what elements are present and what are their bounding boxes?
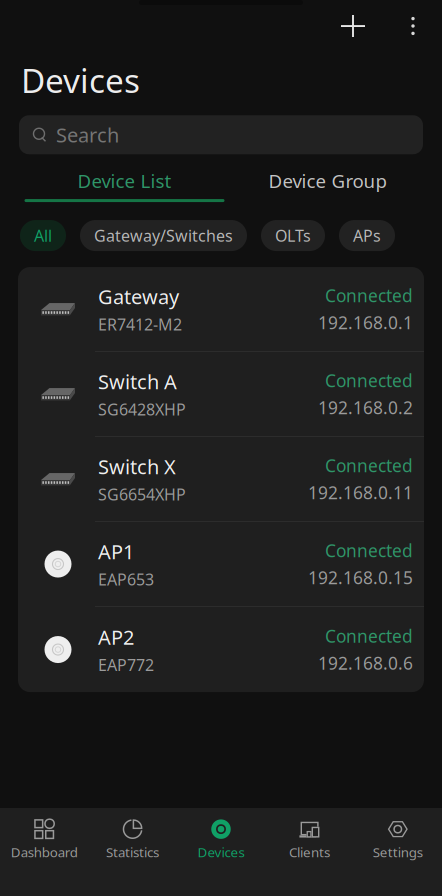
staticText: Connected (325, 539, 413, 562)
staticText: Connected (325, 369, 413, 392)
staticText: All (34, 225, 52, 246)
staticText: 192.168.0.11 (308, 481, 413, 504)
staticText: EAP772 (98, 654, 154, 675)
button[interactable]: Device Group (226, 168, 429, 202)
button[interactable]: Add device (319, 4, 387, 48)
button[interactable]: Gateway (18, 267, 424, 352)
button[interactable]: All (20, 220, 66, 251)
button[interactable]: AP1 (18, 522, 424, 607)
staticText: Gateway (98, 283, 179, 310)
staticText: Clients (289, 843, 330, 861)
button[interactable]: Dashboard (0, 819, 88, 861)
staticText: Statistics (106, 843, 159, 861)
button[interactable]: Devices (177, 819, 265, 861)
staticText: AP2 (98, 624, 134, 650)
staticText: Devices (197, 843, 244, 861)
button[interactable]: OLTs (261, 220, 325, 251)
staticText: Devices (21, 58, 140, 102)
button[interactable]: Gateway/Switches (80, 220, 247, 251)
staticText: Connected (325, 454, 413, 477)
staticText: Dashboard (11, 843, 78, 861)
staticText: OLTs (275, 225, 311, 246)
staticText: APs (353, 225, 381, 246)
staticText: Switch X (98, 453, 176, 480)
button[interactable]: Switch A (18, 352, 424, 437)
staticText: 192.168.0.6 (318, 652, 413, 675)
staticText: 192.168.0.2 (318, 396, 413, 419)
staticText: EAP653 (98, 569, 154, 590)
staticText: 192.168.0.15 (308, 566, 413, 589)
staticText: 192.168.0.1 (318, 311, 413, 334)
button[interactable]: AP2 (18, 607, 424, 692)
staticText: Search (56, 121, 119, 148)
button[interactable]: Device List (23, 168, 226, 202)
button[interactable]: Switch X (18, 437, 424, 522)
staticText: Connected (325, 284, 413, 307)
button[interactable]: More options (387, 4, 439, 48)
staticText: Gateway/Switches (94, 225, 233, 246)
staticText: Connected (325, 624, 413, 647)
button[interactable]: Settings (354, 819, 442, 861)
staticText: Device List (77, 168, 171, 193)
staticText: AP1 (98, 538, 134, 565)
staticText: Switch A (98, 368, 177, 395)
staticText: SG6654XHP (98, 484, 186, 505)
staticText: Device Group (268, 168, 386, 193)
staticText: ER7412-M2 (98, 314, 182, 335)
button[interactable]: Clients (265, 819, 354, 861)
button[interactable]: Statistics (88, 819, 177, 861)
staticText: Settings (373, 843, 423, 861)
staticText: SG6428XHP (98, 399, 186, 420)
button[interactable]: APs (339, 220, 395, 251)
